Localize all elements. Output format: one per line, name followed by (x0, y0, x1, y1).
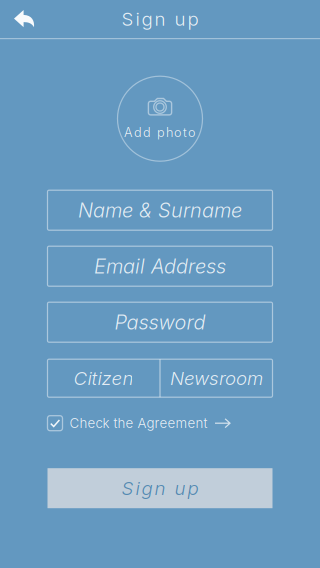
button[interactable]: S i g n u p (47, 468, 272, 508)
staticText: S i g n u p (121, 8, 198, 30)
button[interactable]: Newsroom (161, 359, 273, 397)
staticText: Name & Surname (78, 198, 242, 222)
staticText: Check the Agreement (69, 415, 207, 431)
button[interactable]: Citizen (47, 359, 159, 397)
staticText: Password (114, 310, 205, 334)
staticText: Email Address (94, 254, 226, 278)
staticText: Citizen (73, 367, 133, 389)
staticText: S i g n u p (121, 477, 198, 499)
button[interactable]: Check the Agreement (47, 410, 272, 436)
staticText: A d d p h o t o (124, 125, 196, 140)
staticText: Newsroom (170, 367, 263, 389)
button[interactable]: A d d p h o t o (117, 76, 202, 161)
button[interactable]: Back (0, 0, 47, 38)
